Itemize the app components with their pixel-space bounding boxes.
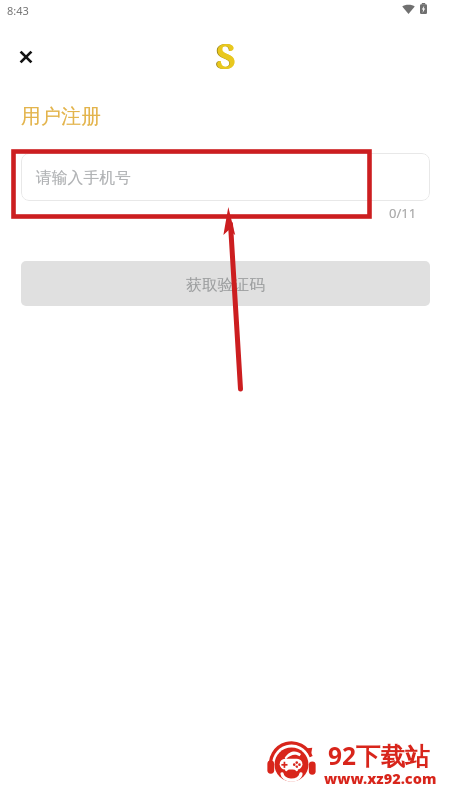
button[interactable]: 请输入手机号 [21, 153, 430, 201]
staticText: 用户注册 [21, 104, 101, 129]
staticText: S [215, 32, 236, 80]
staticText: 请输入手机号 [36, 168, 131, 188]
staticText: 92下载站 [328, 739, 430, 772]
staticText: 8:43 [7, 3, 29, 18]
staticText: 0/11 [389, 204, 417, 222]
button[interactable]: 获取验证码 [21, 261, 430, 306]
button[interactable]: Close [9, 40, 42, 73]
staticText: www.xz92.com [324, 768, 437, 788]
staticText: S [216, 33, 236, 79]
staticText: 获取验证码 [186, 275, 265, 295]
